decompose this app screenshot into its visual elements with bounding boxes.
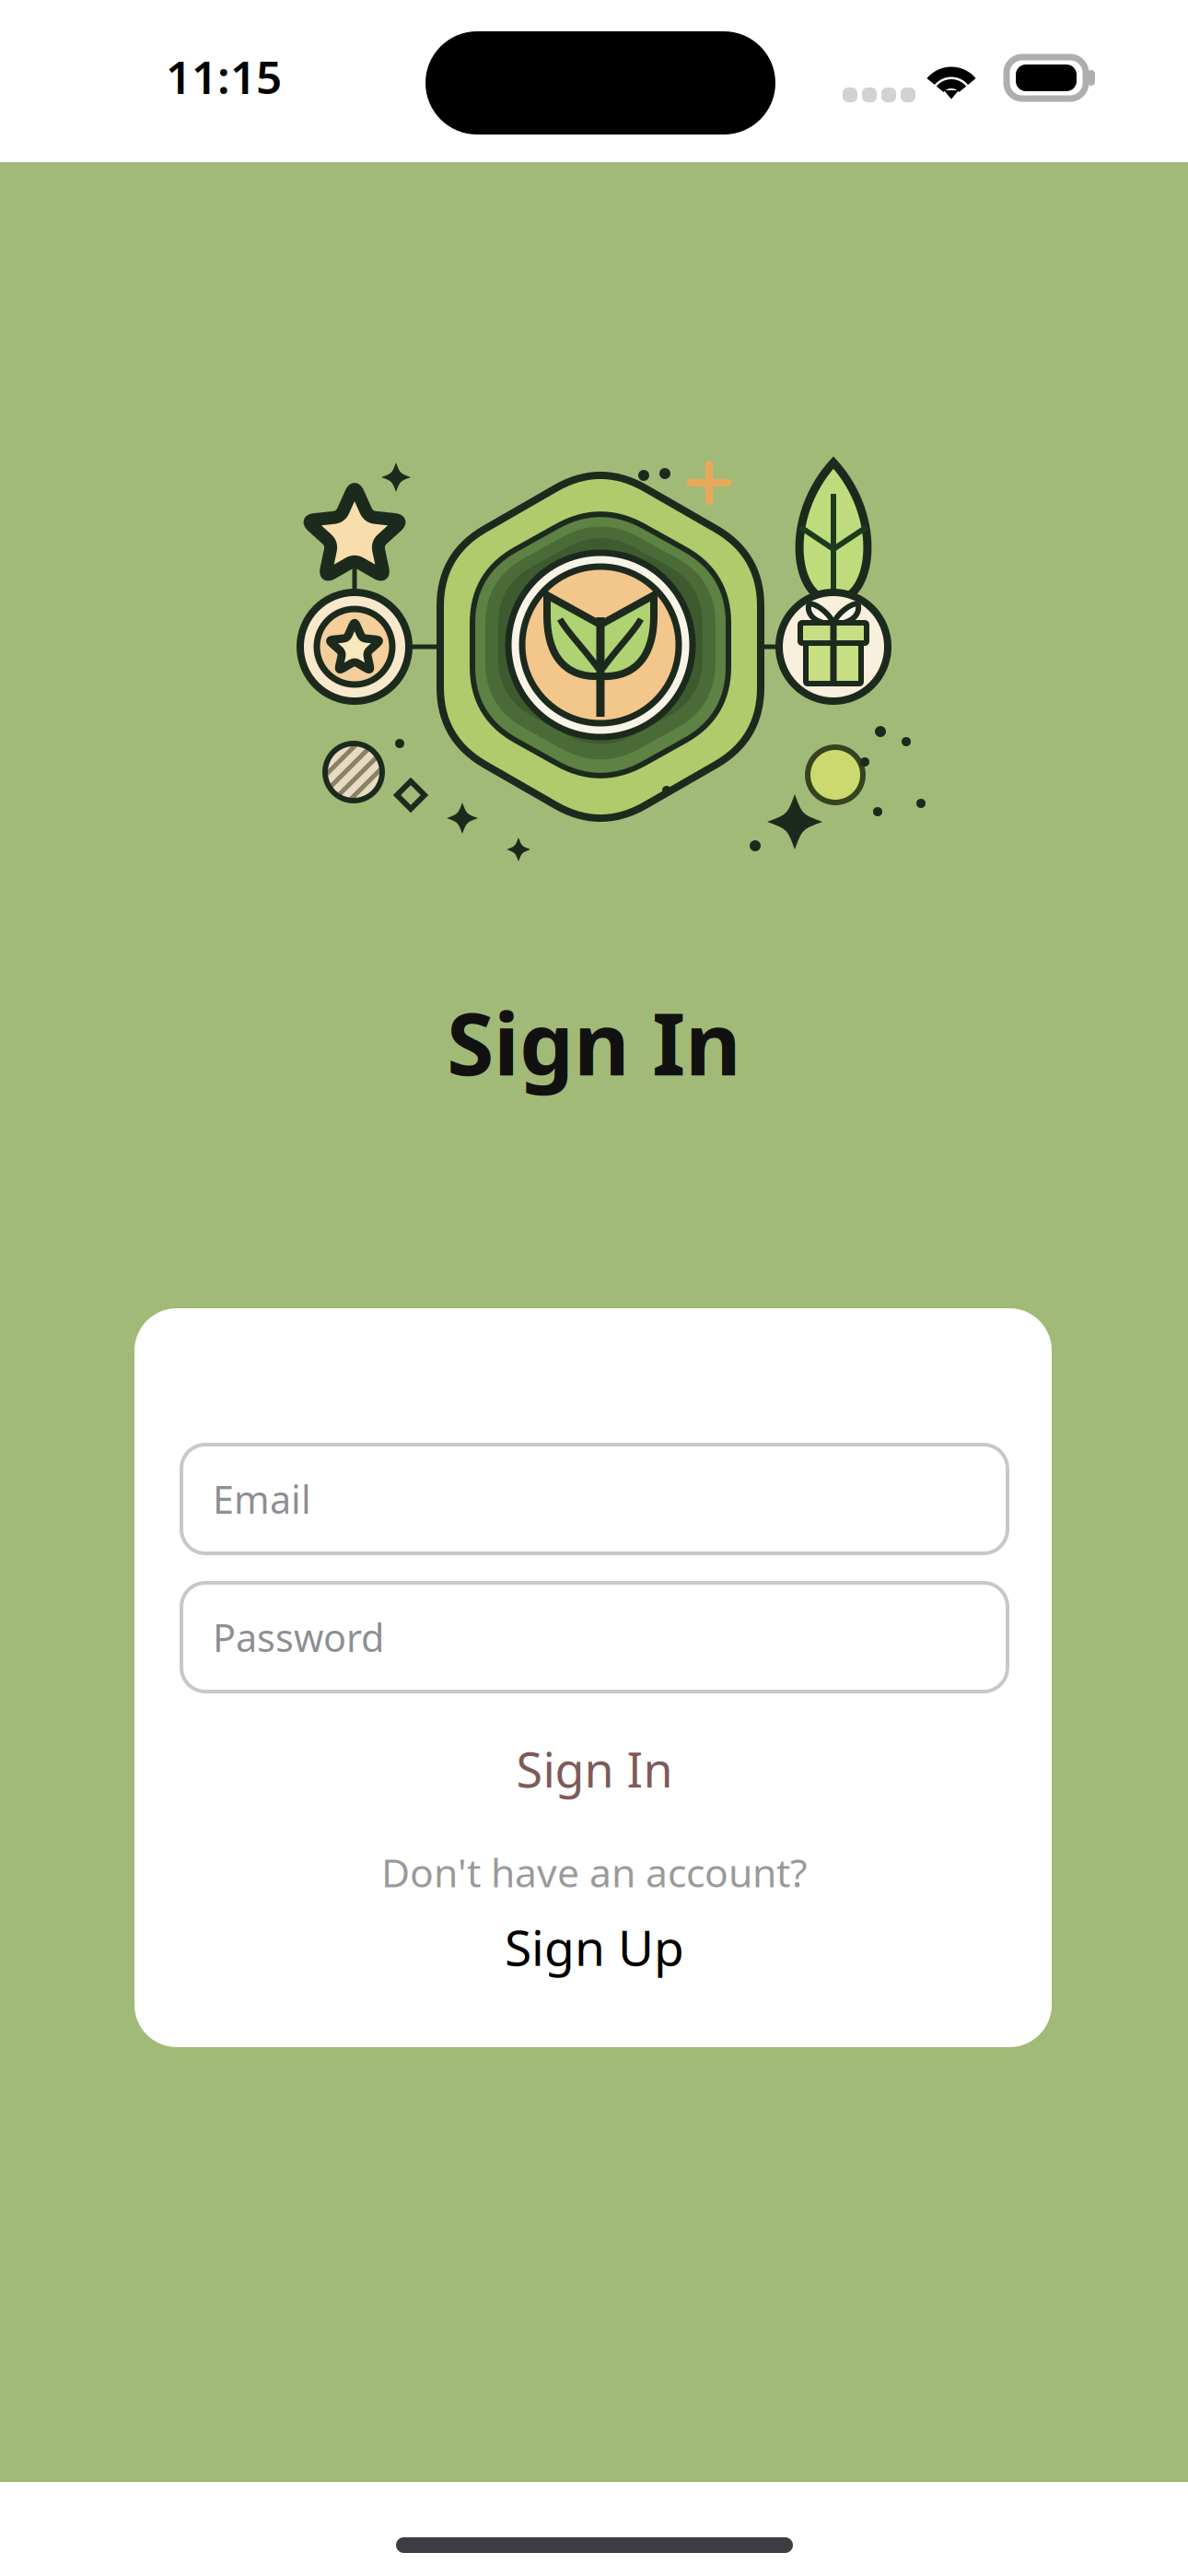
- staticText: Sign In: [516, 1737, 673, 1801]
- button[interactable]: Sign Up: [181, 1914, 1007, 1979]
- staticText: 11:15: [166, 46, 282, 106]
- staticText: Password: [213, 1612, 384, 1663]
- button[interactable]: Password: [181, 1583, 1007, 1692]
- button[interactable]: Sign In: [181, 1732, 1007, 1806]
- staticText: Sign Up: [505, 1914, 684, 1979]
- staticText: Don't have an account?: [381, 1846, 808, 1898]
- staticText: Sign In: [447, 985, 741, 1099]
- staticText: Email: [213, 1474, 311, 1524]
- button[interactable]: Email: [181, 1445, 1007, 1553]
